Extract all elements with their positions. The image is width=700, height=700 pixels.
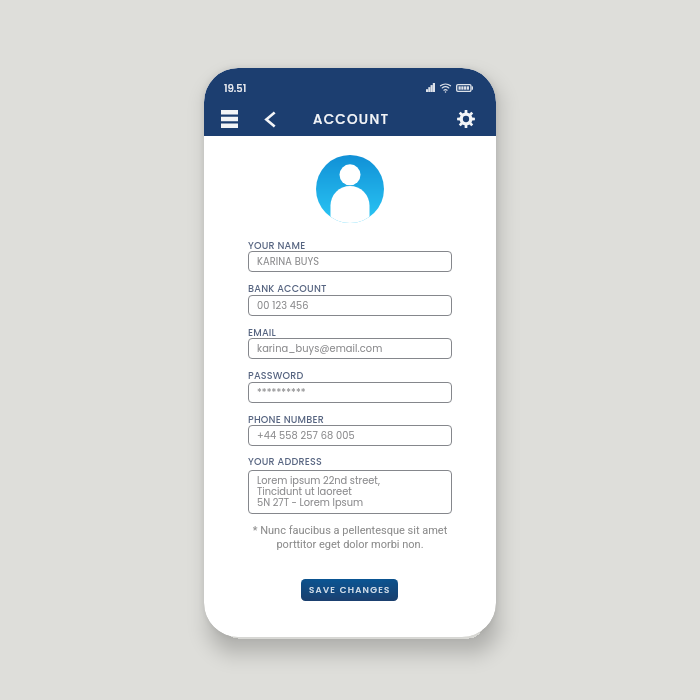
button[interactable]: Profile avatar (316, 155, 384, 223)
staticText: YOUR NAME (248, 239, 306, 252)
staticText: PASSWORD (248, 369, 304, 382)
staticText: KARINA BUYS (257, 255, 320, 269)
button[interactable]: karina_buys@email.com (248, 338, 452, 359)
staticText: ACCOUNT (313, 110, 390, 129)
staticText: Tincidunt ut laoreet (257, 485, 352, 499)
staticText: karina_buys@email.com (257, 342, 383, 356)
button[interactable]: Settings (452, 105, 480, 133)
button[interactable]: Lorem ipsum 22nd street, (248, 470, 452, 514)
button[interactable]: SAVE CHANGES (301, 579, 398, 601)
button[interactable]: ********** (248, 382, 452, 403)
staticText: SAVE CHANGES (309, 584, 391, 596)
staticText: Lorem ipsum 22nd street, (257, 474, 380, 488)
staticText: BANK ACCOUNT (248, 282, 327, 295)
button[interactable]: 00 123 456 (248, 295, 452, 316)
staticText: +44 558 257 68 005 (257, 429, 355, 443)
staticText: PHONE NUMBER (248, 413, 324, 426)
button[interactable]: Menu (216, 105, 243, 133)
button[interactable]: Back (258, 105, 282, 133)
button[interactable]: KARINA BUYS (248, 251, 452, 272)
staticText: YOUR ADDRESS (248, 455, 322, 468)
staticText: ********** (257, 386, 306, 400)
button[interactable]: +44 558 257 68 005 (248, 425, 452, 446)
staticText: EMAIL (248, 326, 276, 339)
staticText: * Nunc faucibus a pellentesque sit amet … (248, 524, 452, 550)
staticText: 19.51 (224, 81, 247, 95)
staticText: 5N 27T - Lorem Ipsum (257, 496, 364, 510)
staticText: 00 123 456 (257, 299, 309, 313)
